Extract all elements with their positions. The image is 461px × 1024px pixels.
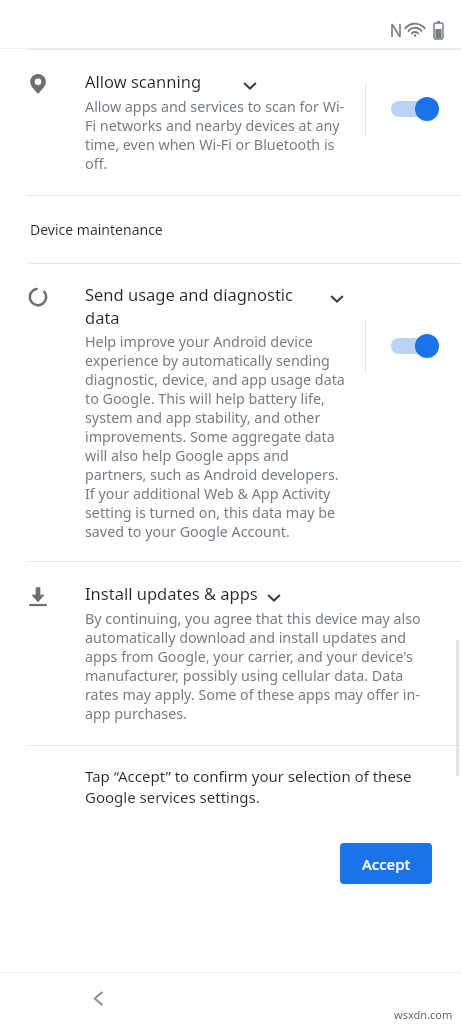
staticText: wsxdn.com xyxy=(394,1007,453,1022)
button[interactable]: Allow scanning xyxy=(85,70,258,94)
button[interactable]: Toggle Send usage and diagnostic data xyxy=(389,333,443,359)
staticText: Accept xyxy=(362,854,411,874)
staticText: Tap “Accept” to confirm your selection o… xyxy=(85,766,435,808)
button[interactable]: Back xyxy=(80,973,116,1024)
button[interactable]: Send usage and diagnostic data xyxy=(85,283,345,329)
staticText: Install updates & apps xyxy=(85,582,258,604)
button[interactable]: Toggle Allow scanning xyxy=(389,96,443,122)
staticText: Send usage and diagnostic data xyxy=(85,283,322,329)
staticText: By continuing, you agree that this devic… xyxy=(85,609,439,723)
button[interactable]: Install updates & apps xyxy=(85,582,282,606)
staticText: Allow apps and services to scan for Wi-F… xyxy=(85,97,350,173)
button[interactable]: Accept xyxy=(340,843,432,884)
staticText: Help improve your Android device experie… xyxy=(85,332,347,541)
staticText: Device maintenance xyxy=(30,220,163,239)
staticText: Allow scanning xyxy=(85,70,235,92)
